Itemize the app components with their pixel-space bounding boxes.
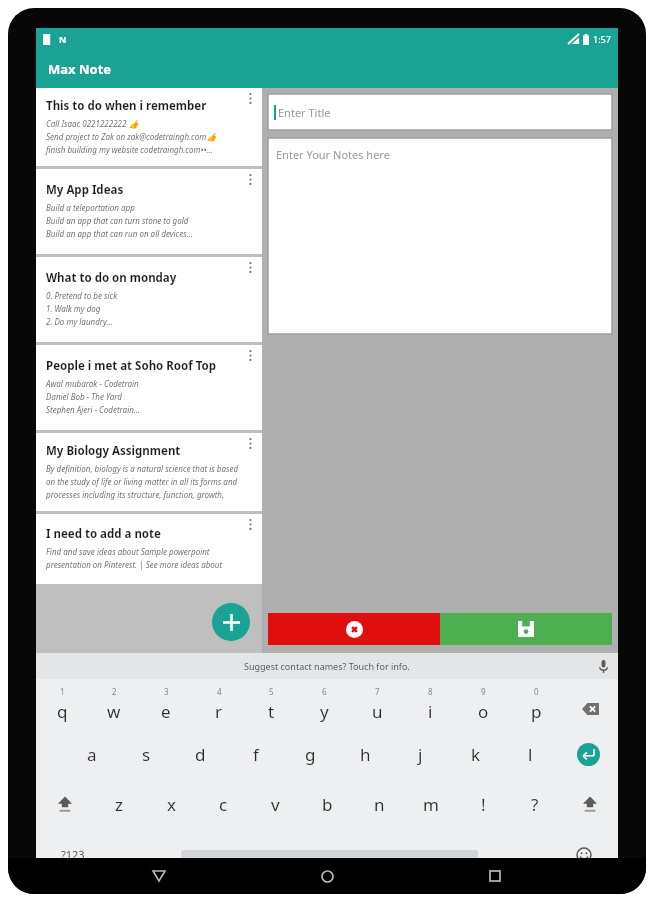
staticText: Find and save ideas about Sample powerpo… xyxy=(46,546,210,557)
staticText: u xyxy=(372,700,383,723)
staticText: This to do when i remember xyxy=(46,98,207,114)
button[interactable]: More options xyxy=(243,91,257,105)
button[interactable]: Add note xyxy=(212,603,250,641)
button[interactable]: c xyxy=(197,779,249,829)
staticText: N xyxy=(59,33,67,45)
button[interactable]: 4 xyxy=(192,679,245,729)
staticText: What to do on monday xyxy=(46,270,177,286)
staticText: i xyxy=(428,700,433,723)
staticText: p xyxy=(531,700,542,723)
button[interactable]: z xyxy=(93,779,145,829)
staticText: 0. Pretend to be sick xyxy=(46,290,118,301)
button[interactable]: d xyxy=(173,729,228,779)
staticText: 5 xyxy=(269,686,274,697)
button[interactable]: a xyxy=(65,729,119,779)
button[interactable]: Shift xyxy=(561,779,618,829)
staticText: 7 xyxy=(375,686,380,697)
staticText: z xyxy=(115,793,123,816)
button[interactable]: I need to add a note xyxy=(36,514,262,584)
button[interactable]: More options xyxy=(243,348,257,362)
button[interactable]: Back xyxy=(142,859,176,893)
button[interactable]: More options xyxy=(243,260,257,274)
button[interactable]: Shift xyxy=(36,779,93,829)
button[interactable]: j xyxy=(393,729,448,779)
button[interactable]: 1 xyxy=(36,679,88,729)
staticText: My Biology Assignment xyxy=(46,443,181,459)
button[interactable]: x xyxy=(145,779,197,829)
staticText: 4 xyxy=(217,686,222,697)
button[interactable]: 9 xyxy=(457,679,510,729)
button[interactable]: My App Ideas xyxy=(36,169,262,254)
button[interactable]: l xyxy=(503,729,558,779)
button[interactable]: 0 xyxy=(510,679,563,729)
staticText: Enter Your Notes here xyxy=(276,147,390,162)
button[interactable]: 8 xyxy=(404,679,457,729)
button[interactable]: Backspace xyxy=(563,679,618,729)
button[interactable]: v xyxy=(249,779,301,829)
staticText: Suggest contact names? Touch for info. xyxy=(244,660,410,672)
button[interactable]: n xyxy=(353,779,405,829)
button[interactable]: h xyxy=(338,729,393,779)
staticText: k xyxy=(471,743,481,766)
button[interactable]: Enter xyxy=(558,729,618,779)
button[interactable]: My Biology Assignment xyxy=(36,433,262,511)
button[interactable]: ?123 xyxy=(36,829,110,880)
button[interactable]: s xyxy=(119,729,173,779)
staticText: e xyxy=(161,700,171,723)
staticText: Enter Title xyxy=(278,105,331,120)
button[interactable]: Home xyxy=(310,859,344,893)
staticText: , xyxy=(137,845,142,865)
button[interactable]: k xyxy=(448,729,503,779)
staticText: ! xyxy=(481,793,486,816)
button[interactable]: 3 xyxy=(140,679,192,729)
button[interactable]: 6 xyxy=(298,679,351,729)
staticText: By definition, biology is a natural scie… xyxy=(46,463,239,474)
staticText: m xyxy=(423,793,439,816)
staticText: c xyxy=(219,793,228,816)
staticText: Awal mubarak - Codetrain xyxy=(46,378,139,389)
button[interactable]: Emoji xyxy=(549,829,618,880)
staticText: w xyxy=(107,700,121,723)
button[interactable]: Enter Your Notes here xyxy=(268,138,612,334)
button[interactable]: More options xyxy=(243,172,257,186)
staticText: Daniel Bob - The Yard xyxy=(46,391,122,402)
button[interactable]: Save xyxy=(440,613,612,645)
staticText: g xyxy=(305,743,316,766)
button[interactable]: 2 xyxy=(88,679,140,729)
button[interactable]: f xyxy=(228,729,283,779)
staticText: Build an app that can turn stone to gold xyxy=(46,215,189,226)
staticText: Build a teleportation app xyxy=(46,202,135,213)
button[interactable]: ? xyxy=(509,779,561,829)
button[interactable]: b xyxy=(301,779,353,829)
button[interactable]: , xyxy=(110,829,168,880)
button[interactable]: This to do when i remember xyxy=(36,88,262,166)
button[interactable]: . xyxy=(491,829,549,880)
staticText: Build an app that can run on all devices… xyxy=(46,228,193,239)
button[interactable]: Space xyxy=(168,829,491,880)
button[interactable]: 5 xyxy=(245,679,298,729)
staticText: l xyxy=(528,743,533,766)
staticText: My App Ideas xyxy=(46,182,124,198)
button[interactable]: 7 xyxy=(351,679,404,729)
button[interactable]: g xyxy=(283,729,338,779)
button[interactable]: Cancel xyxy=(268,613,440,645)
button[interactable]: People i met at Soho Roof Top xyxy=(36,345,262,430)
staticText: Stephen Ajeri - Codetrain… xyxy=(46,404,141,415)
staticText: 2. Do my laundry… xyxy=(46,316,113,327)
button[interactable]: m xyxy=(405,779,457,829)
staticText: d xyxy=(195,743,206,766)
button[interactable]: ! xyxy=(457,779,509,829)
button[interactable]: Recents xyxy=(478,859,512,893)
staticText: ? xyxy=(531,793,539,816)
staticText: 9 xyxy=(481,686,486,697)
button[interactable]: What to do on monday xyxy=(36,257,262,342)
button[interactable]: Enter Title xyxy=(268,94,612,130)
staticText: People i met at Soho Roof Top xyxy=(46,358,216,374)
staticText: 1. Walk my dog xyxy=(46,303,101,314)
button[interactable]: More options xyxy=(243,436,257,450)
button[interactable]: More options xyxy=(243,517,257,531)
staticText: r xyxy=(215,700,223,723)
staticText: Max Note xyxy=(48,60,112,78)
staticText: Send project to Zak on zak@codetraingh.c… xyxy=(46,131,217,142)
staticText: presentation on Pinterest. | See more id… xyxy=(46,559,223,570)
